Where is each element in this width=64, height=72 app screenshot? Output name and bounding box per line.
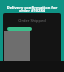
staticText: Delivery confirmation for	[0, 5, 64, 10]
button[interactable]	[7, 27, 32, 31]
staticText: Order Shipped	[0, 18, 64, 23]
staticText: order #10284	[0, 8, 64, 13]
